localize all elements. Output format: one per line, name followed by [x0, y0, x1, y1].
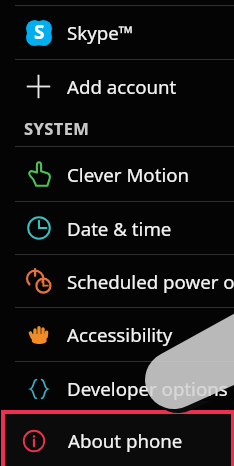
button[interactable]: Date & time: [0, 202, 234, 254]
button[interactable]: Add account: [0, 60, 234, 113]
staticText: S: [34, 19, 45, 45]
staticText: About phone: [68, 428, 183, 453]
staticText: Add account: [67, 74, 177, 99]
button[interactable]: About phone: [5, 414, 231, 466]
staticText: Accessibility: [67, 322, 173, 347]
staticText: Scheduled power off: [67, 269, 234, 294]
button[interactable]: Developer options: [0, 362, 234, 415]
staticText: SYSTEM: [24, 117, 90, 139]
staticText: Date & time: [67, 216, 172, 241]
other: About phone: [23, 430, 45, 452]
staticText: Developer options: [67, 376, 228, 401]
staticText: Skype™: [67, 20, 134, 45]
button[interactable]: Accessibility: [0, 308, 234, 361]
button[interactable]: Scheduled power off: [0, 255, 234, 307]
staticText: Clever Motion: [67, 162, 190, 187]
button[interactable]: Clever Motion: [0, 147, 234, 201]
button[interactable]: S: [0, 6, 234, 59]
